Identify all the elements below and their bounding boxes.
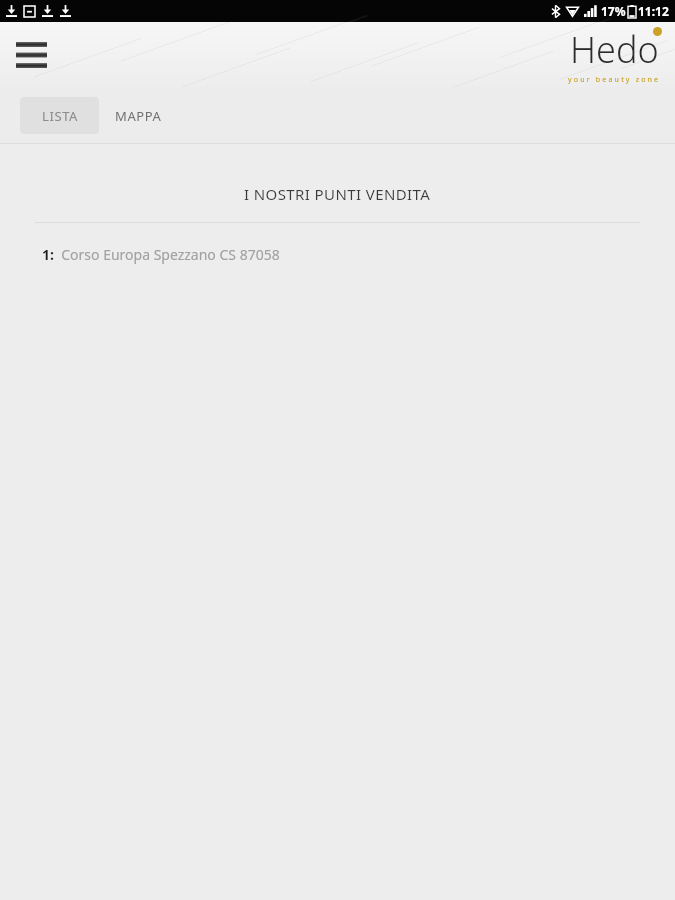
staticText: 11:12: [638, 3, 669, 19]
staticText: your beauty zone: [568, 75, 661, 85]
button[interactable]: MAPPA: [99, 97, 178, 134]
button[interactable]: Open navigation menu: [8, 32, 54, 78]
staticText: LISTA: [42, 107, 78, 125]
staticText: 1: Corso Europa Spezzano CS 87058: [42, 245, 280, 264]
staticText: MAPPA: [115, 107, 162, 125]
staticText: I NOSTRI PUNTI VENDITA: [244, 184, 431, 204]
staticText: 17%: [601, 3, 626, 19]
button[interactable]: Hedo your beauty zone: [568, 25, 661, 85]
staticText: Hedo: [570, 25, 659, 74]
button[interactable]: 1: Corso Europa Spezzano CS 87058: [0, 223, 675, 285]
button[interactable]: LISTA: [20, 97, 99, 134]
